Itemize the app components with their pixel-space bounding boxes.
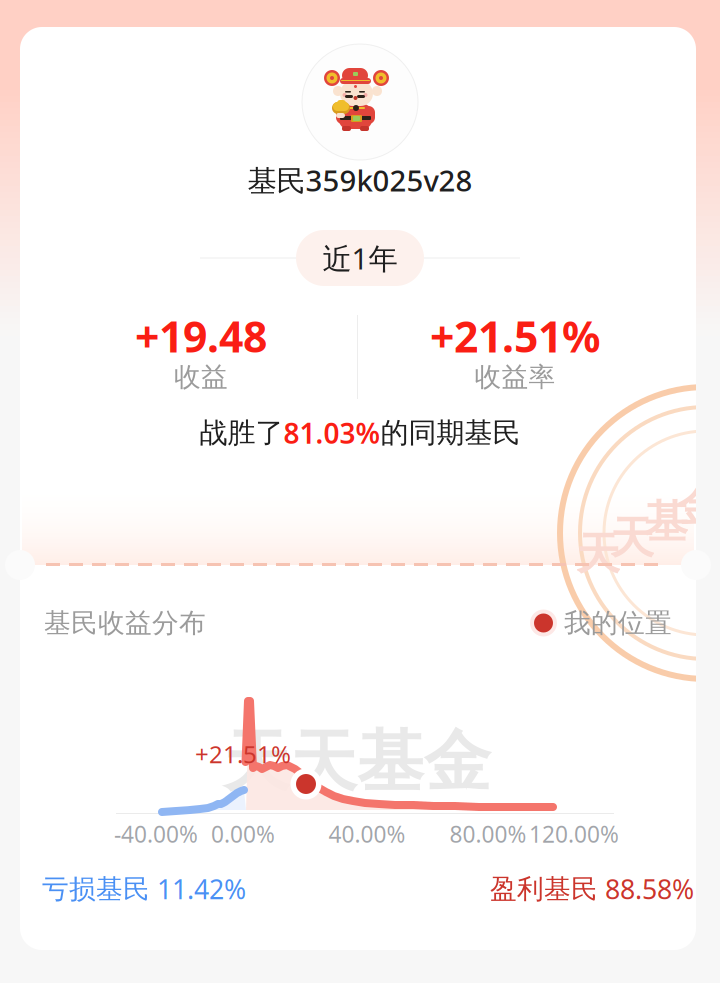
staticText: 收益	[174, 361, 228, 393]
staticText: 11.42%	[157, 871, 246, 907]
staticText: 我的位置	[564, 607, 672, 639]
staticText: 0.00%	[211, 819, 275, 849]
staticText: 40.00%	[328, 819, 405, 849]
staticText: 80.00%	[449, 819, 526, 849]
staticText: 近1年	[322, 238, 397, 277]
staticText: 基	[644, 495, 688, 549]
staticText: 天	[576, 527, 620, 581]
staticText: -40.00%	[114, 819, 198, 849]
staticText: 金	[678, 479, 720, 533]
staticText: 战胜了	[199, 416, 283, 450]
staticText: +21.51%	[195, 738, 291, 770]
staticText: +19.48	[135, 308, 267, 364]
staticText: 盈利基民	[490, 873, 598, 905]
staticText: 120.00%	[529, 819, 619, 849]
staticText: 基民359k025v28	[247, 160, 472, 199]
staticText: +21.51%	[430, 308, 600, 364]
staticText: 亏损基民	[42, 873, 150, 905]
staticText: 的同期基民	[380, 416, 520, 450]
staticText: 天天基金	[223, 721, 491, 803]
staticText: 基民收益分布	[44, 607, 206, 639]
staticText: 天	[610, 511, 654, 565]
staticText: 收益率	[474, 361, 555, 393]
staticText: 88.58%	[605, 871, 694, 907]
staticText: 81.03%	[283, 414, 380, 452]
